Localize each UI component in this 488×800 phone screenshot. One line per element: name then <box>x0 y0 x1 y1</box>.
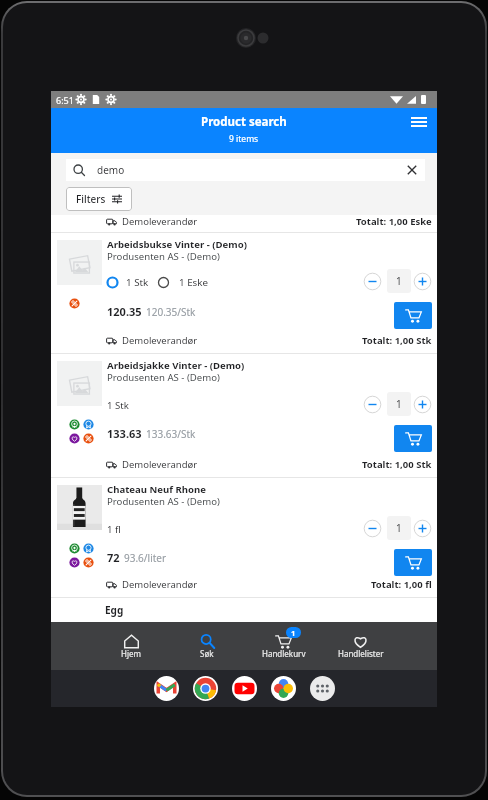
staticText: Demoleverandør <box>122 458 198 471</box>
staticText: 1 <box>396 397 402 411</box>
staticText: Produsenten AS - (Demo) <box>107 495 220 508</box>
staticText: Demoleverandør <box>122 215 198 228</box>
staticText: 93.6/liter <box>124 551 167 565</box>
staticText: demo <box>97 163 125 177</box>
staticText: Handlekurv <box>262 648 306 659</box>
button[interactable]: Handlelister <box>322 623 399 671</box>
button[interactable]: Arbeidsbukse Vinter - (Demo) <box>51 233 437 353</box>
button[interactable]: 1 <box>245 623 322 671</box>
staticText: Demoleverandør <box>122 334 198 347</box>
button[interactable]: Filters <box>66 187 132 211</box>
staticText: Produsenten AS - (Demo) <box>107 250 220 263</box>
staticText: Filters <box>76 192 106 206</box>
staticText: 1 Eske <box>179 276 209 289</box>
button[interactable]: Increase quantity <box>412 394 433 415</box>
staticText: Egg <box>105 603 124 617</box>
button[interactable]: 1 <box>387 392 411 416</box>
button[interactable]: Select unit <box>106 276 119 289</box>
staticText: Chateau Neuf Rhone <box>107 483 206 496</box>
button[interactable]: App shortcut <box>154 676 179 701</box>
button[interactable]: App shortcut <box>193 676 218 701</box>
staticText: Totalt: 1,00 Stk <box>362 458 432 471</box>
button[interactable]: Decrease quantity <box>362 271 383 292</box>
staticText: 1 Stk <box>107 399 129 412</box>
staticText: 9 items <box>229 133 259 145</box>
staticText: Demoleverandør <box>122 578 198 591</box>
button[interactable]: Arbeidsjakke Vinter - (Demo) <box>51 354 437 477</box>
button[interactable]: Clear search <box>401 159 423 181</box>
button[interactable]: Add to cart <box>394 302 432 329</box>
button[interactable]: Increase quantity <box>412 271 433 292</box>
staticText: Arbeidsjakke Vinter - (Demo) <box>107 359 245 372</box>
staticText: 1 Stk <box>126 276 149 289</box>
staticText: 1 <box>291 628 296 638</box>
staticText: 1 <box>396 274 402 288</box>
staticText: Handlelister <box>338 648 384 659</box>
staticText: 133.63/Stk <box>146 427 196 441</box>
staticText: 120.35/Stk <box>146 305 196 319</box>
button[interactable]: Select unit <box>157 276 170 289</box>
staticText: Totalt: 1,00 fl <box>371 578 432 591</box>
staticText: 72 <box>107 550 120 565</box>
button[interactable]: App shortcut <box>310 676 335 701</box>
button[interactable]: Add to cart <box>394 425 432 452</box>
staticText: Totalt: 1,00 Stk <box>362 334 432 347</box>
button[interactable]: App shortcut <box>271 676 296 701</box>
staticText: Søk <box>200 648 214 659</box>
staticText: 1 <box>396 521 402 535</box>
button[interactable]: Chateau Neuf Rhone <box>51 478 437 597</box>
staticText: 120.35 <box>107 304 142 319</box>
staticText: 1 fl <box>107 523 121 536</box>
button[interactable]: Add to cart <box>394 549 432 576</box>
button[interactable]: 1 <box>387 516 411 540</box>
staticText: Hjem <box>121 648 141 659</box>
staticText: Arbeidsbukse Vinter - (Demo) <box>107 238 247 251</box>
staticText: 6:51 <box>56 94 74 106</box>
staticText: Produsenten AS - (Demo) <box>107 371 220 384</box>
button[interactable]: Decrease quantity <box>362 518 383 539</box>
button[interactable]: 1 <box>387 269 411 293</box>
staticText: Product search <box>201 114 287 130</box>
button[interactable]: Søk <box>169 623 245 671</box>
button[interactable]: App shortcut <box>232 676 257 701</box>
staticText: 133.63 <box>107 426 142 441</box>
button[interactable]: demo <box>66 159 425 181</box>
button[interactable]: Increase quantity <box>412 518 433 539</box>
staticText: Totalt: 1,00 Eske <box>356 215 432 228</box>
button[interactable]: Decrease quantity <box>362 394 383 415</box>
button[interactable]: Hjem <box>93 623 169 671</box>
button[interactable]: Menu <box>404 109 434 135</box>
